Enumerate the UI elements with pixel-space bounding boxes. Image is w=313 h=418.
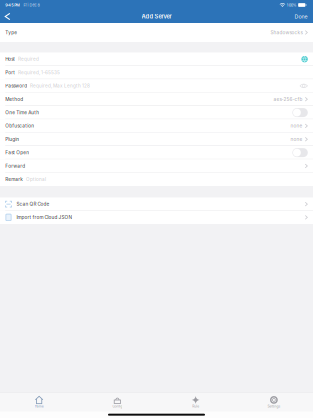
staticText: Settings xyxy=(267,404,280,408)
button[interactable]: Scan QR Code xyxy=(0,197,313,211)
staticText: Rule xyxy=(192,404,199,408)
staticText: Import from Cloud JSON xyxy=(16,215,72,220)
staticText: Remark xyxy=(5,176,23,182)
button[interactable]: Fast Open xyxy=(0,146,313,159)
staticText: One Time Auth xyxy=(5,110,39,115)
button[interactable]: Import from Cloud JSON xyxy=(0,211,313,224)
staticText: Password xyxy=(5,83,27,89)
staticText: Required xyxy=(18,56,39,62)
staticText: Port xyxy=(5,70,15,75)
staticText: Fri Dec 8 xyxy=(23,3,39,7)
staticText: aes-256-cfb xyxy=(274,96,303,102)
staticText: Shadowsocks xyxy=(271,30,303,35)
staticText: Type xyxy=(5,30,17,35)
button[interactable]: Obfuscation xyxy=(0,119,313,132)
staticText: Plugin xyxy=(5,136,19,142)
staticText: none xyxy=(291,136,303,142)
staticText: Required, Max Length 128 xyxy=(30,83,90,89)
button[interactable]: Back xyxy=(0,10,20,23)
staticText: Host xyxy=(5,56,15,62)
button[interactable]: Forward xyxy=(0,159,313,173)
staticText: Required, 1-65535 xyxy=(18,70,60,75)
button[interactable]: Method xyxy=(0,92,313,106)
button[interactable]: Done xyxy=(286,11,313,22)
button[interactable]: Type xyxy=(0,23,313,42)
staticText: Forward xyxy=(5,163,25,169)
staticText: Fast Open xyxy=(5,150,29,155)
button[interactable]: Config xyxy=(78,393,156,411)
button[interactable]: Rule xyxy=(156,393,235,411)
staticText: Obfuscation xyxy=(5,123,34,129)
staticText: Scan QR Code xyxy=(16,201,49,207)
staticText: Config xyxy=(112,404,122,408)
button[interactable]: Home xyxy=(0,393,78,411)
button[interactable]: Settings xyxy=(235,393,313,411)
staticText: Add Server xyxy=(141,13,171,20)
button[interactable]: One Time Auth xyxy=(0,106,313,119)
staticText: 9:45 PM xyxy=(5,3,20,7)
staticText: none xyxy=(291,123,303,129)
staticText: 100% xyxy=(287,3,297,7)
staticText: Done xyxy=(295,13,308,20)
staticText: Method xyxy=(5,96,23,102)
staticText: Home xyxy=(35,404,44,408)
button[interactable]: Plugin xyxy=(0,133,313,146)
staticText: Optional xyxy=(26,176,46,182)
